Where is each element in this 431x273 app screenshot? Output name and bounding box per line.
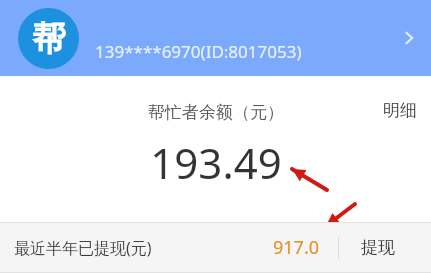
- staticText: 最近半年已提现(元): [14, 237, 152, 259]
- staticText: 帮忙者余额（元）: [148, 102, 284, 123]
- button[interactable]: Account details: [395, 24, 423, 52]
- button[interactable]: 帮: [0, 0, 431, 76]
- button[interactable]: 明细: [377, 94, 423, 127]
- button[interactable]: 提现: [339, 222, 417, 273]
- staticText: 917.0: [273, 235, 320, 260]
- staticText: 明细: [383, 100, 417, 121]
- staticText: 193.49: [150, 134, 282, 191]
- staticText: 帮: [32, 17, 66, 60]
- staticText: 139****6970(ID:8017053): [95, 40, 302, 63]
- staticText: 提现: [361, 237, 395, 258]
